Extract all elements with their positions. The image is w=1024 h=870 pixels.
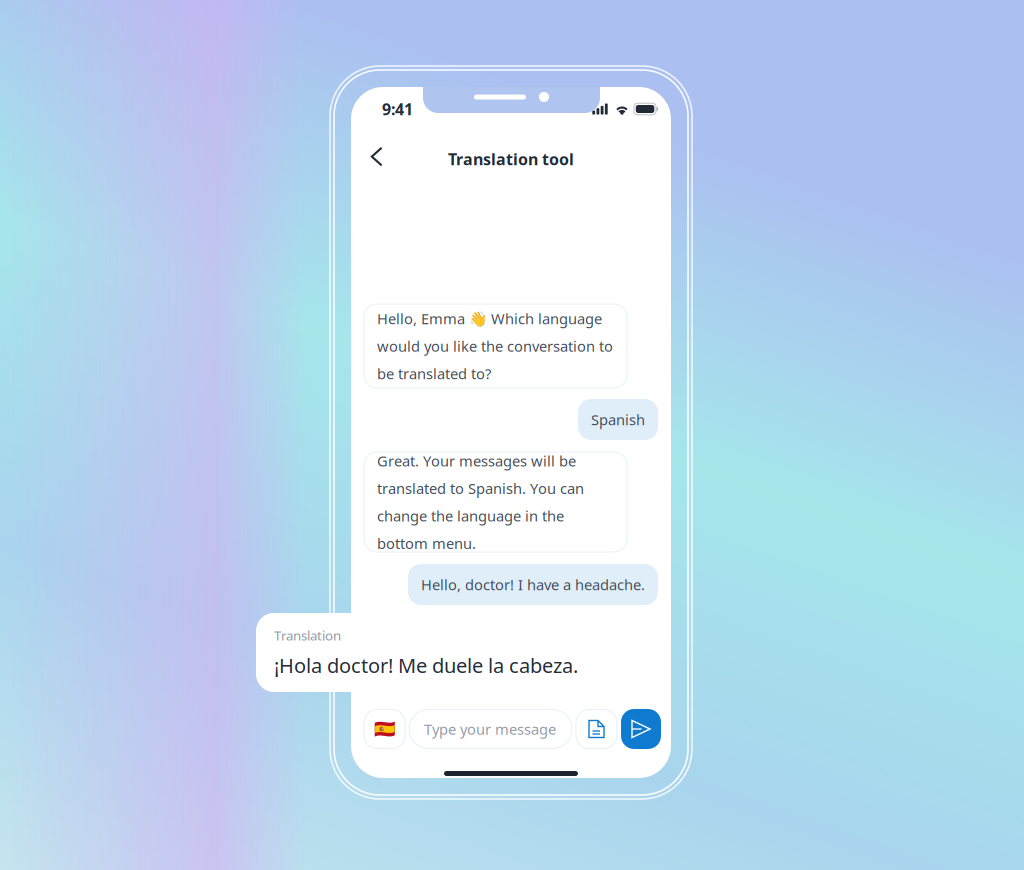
staticText: Hello, doctor! I have a headache.	[421, 575, 645, 594]
staticText: Translation	[274, 626, 341, 644]
button[interactable]: Send	[621, 709, 661, 749]
staticText: Hello, Emma 👋 Which language would you l…	[377, 309, 613, 383]
staticText: Translation tool	[448, 148, 574, 170]
staticText: 🇪🇸	[373, 719, 395, 739]
staticText: Spanish	[591, 410, 645, 429]
button[interactable]: Attach document	[576, 709, 617, 748]
button[interactable]: Language: Spanish	[364, 709, 405, 748]
button[interactable]: Type your message	[409, 709, 572, 748]
button[interactable]: Back	[359, 129, 395, 175]
staticText: ¡Hola doctor! Me duele la cabeza.	[274, 652, 578, 679]
staticText: Type your message	[424, 719, 556, 739]
staticText: Great. Your messages will be translated …	[377, 451, 584, 553]
staticText: 9:41	[382, 98, 413, 120]
